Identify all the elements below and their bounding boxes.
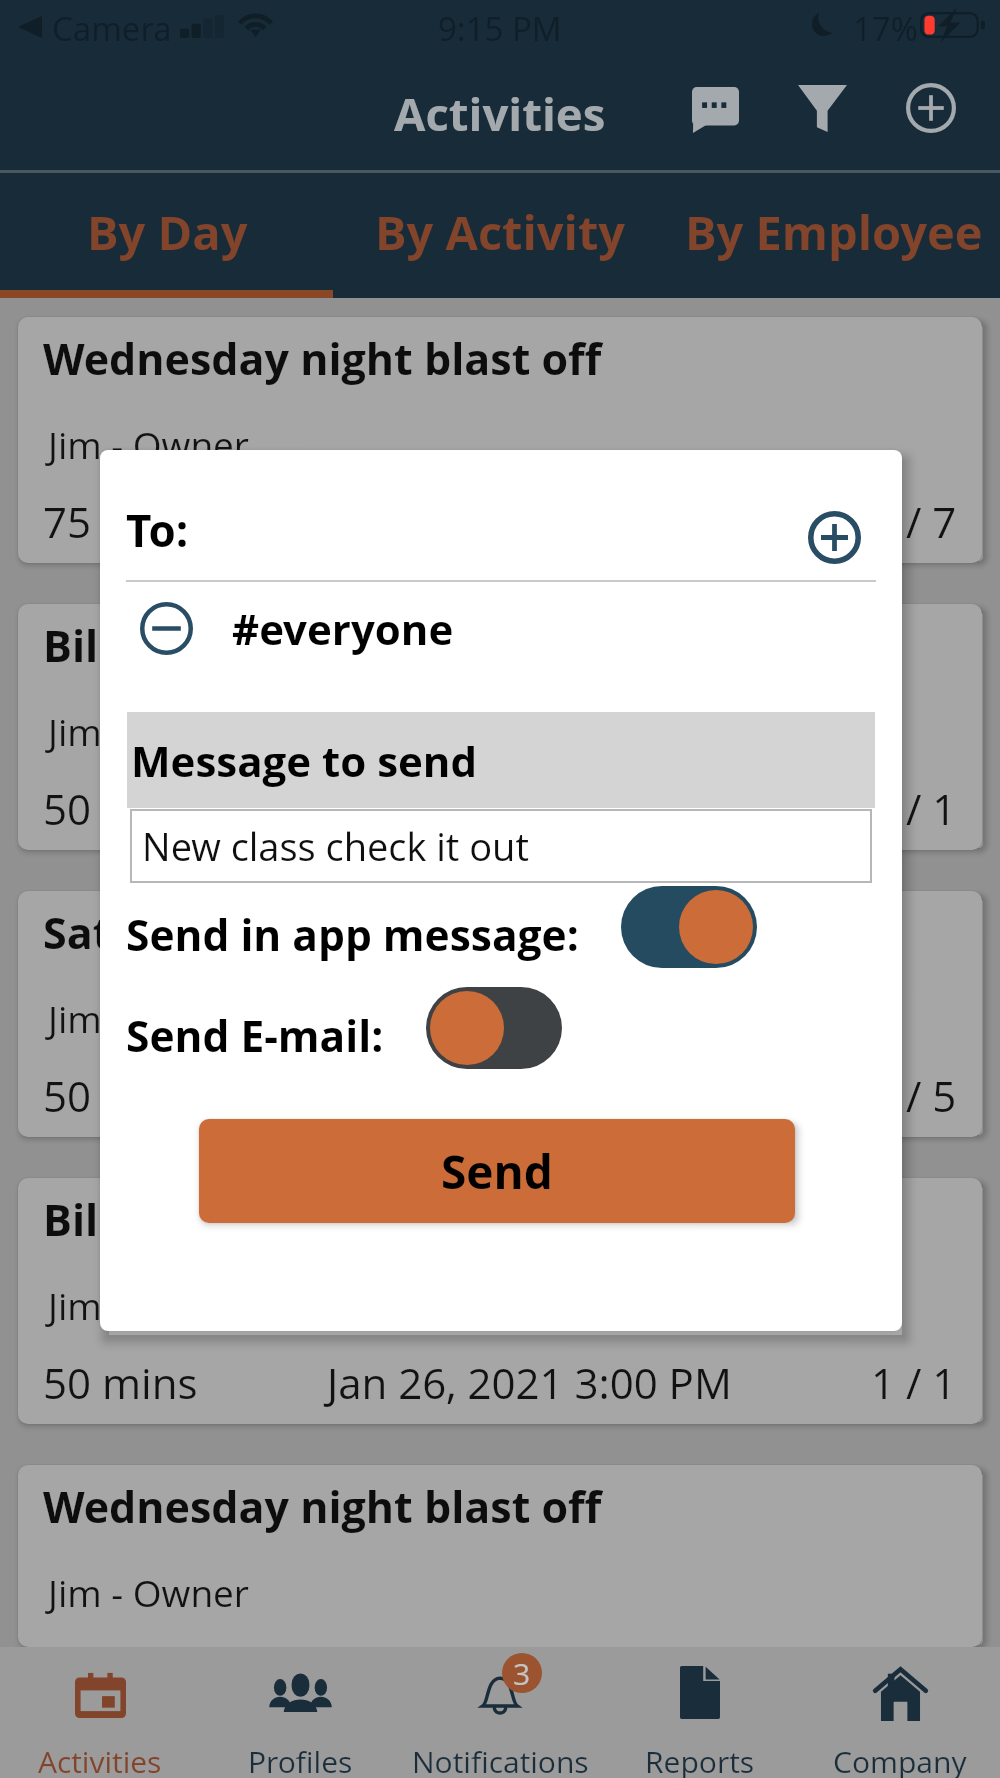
staticText: Jim - Owner bbox=[48, 1567, 249, 1617]
staticText: Wednesday night blast off bbox=[43, 329, 602, 388]
staticText: Jim - Owner bbox=[48, 706, 249, 756]
button[interactable]: By Day bbox=[0, 173, 334, 290]
button[interactable]: Add recipient bbox=[803, 506, 865, 568]
staticText: Company bbox=[833, 1741, 967, 1778]
staticText: 50 mins bbox=[43, 1354, 198, 1411]
staticText: 17% bbox=[853, 6, 918, 51]
button[interactable]: Filter bbox=[772, 55, 872, 170]
staticText: 4 / 7 bbox=[871, 493, 957, 550]
button[interactable]: Wednesday night blast off bbox=[18, 317, 982, 563]
button[interactable]: Saturday morning bbox=[18, 891, 982, 1137]
button[interactable]: Send bbox=[199, 1119, 795, 1223]
staticText: Wednesday night blast off bbox=[43, 1477, 602, 1536]
staticText: Notifications bbox=[412, 1741, 589, 1778]
staticText: #everyone bbox=[232, 600, 454, 657]
staticText: Jim - Owner bbox=[48, 419, 249, 469]
button[interactable]: Activities bbox=[0, 1647, 200, 1778]
staticText: 50 mins bbox=[43, 1067, 198, 1124]
button[interactable]: Billy Bobs class bbox=[18, 1178, 982, 1424]
button[interactable]: By Activity bbox=[334, 173, 667, 290]
staticText: Profiles bbox=[248, 1741, 353, 1778]
staticText: By Activity bbox=[375, 200, 626, 264]
button[interactable]: Billy Bobs class bbox=[18, 604, 982, 850]
staticText: Jim - Owner bbox=[48, 1280, 249, 1330]
button[interactable]: Off bbox=[426, 987, 562, 1069]
staticText: Billy Bobs class bbox=[43, 1190, 367, 1249]
staticText: Billy Bobs class bbox=[43, 616, 367, 675]
staticText: By Day bbox=[87, 200, 248, 264]
button[interactable]: Add bbox=[881, 55, 981, 170]
button[interactable]: Reports bbox=[600, 1647, 800, 1778]
button[interactable]: 3 bbox=[400, 1647, 600, 1778]
staticText: Send in app message: bbox=[126, 906, 579, 964]
button[interactable]: Messages bbox=[668, 55, 762, 170]
staticText: By Employee bbox=[685, 200, 983, 264]
staticText: 1 / 1 bbox=[871, 1354, 957, 1411]
staticText: Send E-mail: bbox=[126, 1007, 384, 1065]
staticText: 3 / 5 bbox=[871, 1067, 957, 1124]
staticText: Activities bbox=[38, 1741, 162, 1778]
button[interactable]: By Employee bbox=[667, 173, 1000, 290]
staticText: Camera bbox=[52, 6, 172, 51]
button[interactable]: Profiles bbox=[200, 1647, 400, 1778]
staticText: 50 mins bbox=[43, 780, 198, 837]
button[interactable]: On bbox=[621, 886, 757, 968]
button[interactable]: #everyone bbox=[126, 593, 876, 663]
staticText: Saturday morning bbox=[43, 903, 430, 962]
staticText: Message to send bbox=[131, 732, 478, 789]
staticText: New class check it out bbox=[142, 820, 529, 872]
staticText: 9:15 PM bbox=[438, 6, 562, 51]
staticText: Reports bbox=[645, 1741, 755, 1778]
staticText: 75 mins bbox=[43, 493, 198, 550]
staticText: 0 / 1 bbox=[871, 780, 957, 837]
staticText: Jim - Owner bbox=[48, 993, 249, 1043]
staticText: Jan 26, 2021 3:00 PM bbox=[327, 780, 732, 837]
staticText: Jan 26, 2021 3:00 PM bbox=[327, 1354, 732, 1411]
button[interactable]: Wednesday night blast off bbox=[18, 1465, 982, 1647]
staticText: Activities bbox=[394, 82, 606, 144]
button[interactable]: New class check it out bbox=[131, 810, 871, 882]
staticText: Jan 26, 2021 3:00 PM bbox=[327, 1067, 732, 1124]
button[interactable]: Company bbox=[800, 1647, 1000, 1778]
staticText: Send bbox=[441, 1140, 553, 1203]
staticText: 3 bbox=[513, 1653, 531, 1693]
staticText: To: bbox=[126, 500, 189, 560]
